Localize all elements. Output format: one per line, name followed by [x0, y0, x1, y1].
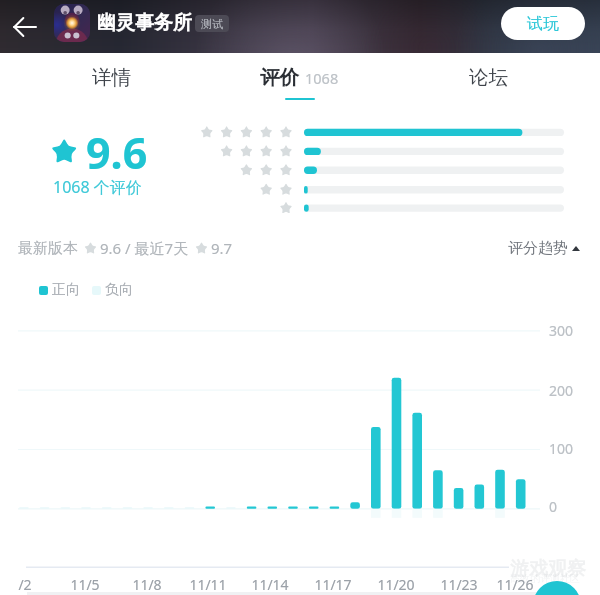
staticText: 1068 — [305, 68, 339, 88]
staticText: 11/5 — [70, 575, 100, 594]
staticText: 最新版本 — [18, 239, 78, 258]
staticText: 11/14 — [251, 575, 289, 594]
staticText: 0 — [549, 497, 558, 516]
staticText: 200 — [549, 381, 574, 400]
staticText: 11/8 — [132, 575, 162, 594]
staticText: 11/20 — [377, 575, 415, 594]
staticText: 高效的评测社区 — [510, 572, 580, 585]
staticText: 详情 — [92, 65, 131, 90]
button[interactable]: 评分趋势 — [508, 239, 580, 258]
staticText: 300 — [549, 321, 574, 340]
staticText: 1068 个评价 — [53, 176, 142, 198]
staticText: 9.7 — [211, 238, 233, 258]
staticText: 100 — [549, 439, 574, 458]
staticText: 评分趋势 — [508, 239, 568, 258]
staticText: 论坛 — [469, 65, 508, 90]
staticText: 正向 — [52, 281, 80, 299]
staticText: 11/23 — [440, 575, 478, 594]
staticText: 幽灵事务所 — [97, 11, 192, 35]
button[interactable]: 评价 — [205, 53, 394, 100]
button[interactable]: 详情 — [17, 53, 205, 100]
staticText: 负向 — [105, 281, 133, 299]
staticText: 11/11 — [189, 575, 227, 594]
button[interactable]: 试玩 — [501, 7, 585, 40]
staticText: 试玩 — [527, 14, 559, 34]
button[interactable]: Write review — [533, 581, 581, 595]
staticText: /2 — [18, 575, 32, 594]
staticText: 测试 — [201, 17, 223, 31]
staticText: 11/26 — [496, 575, 534, 594]
button[interactable]: 论坛 — [394, 53, 583, 100]
staticText: 评价 — [260, 65, 299, 90]
staticText: 9.6 / 最近7天 — [100, 238, 189, 258]
staticText: 11/17 — [314, 575, 352, 594]
button[interactable]: Back — [6, 8, 44, 46]
staticText: 游戏观察 — [510, 557, 586, 581]
button[interactable] — [54, 4, 90, 42]
staticText: 9.6 — [86, 123, 148, 182]
